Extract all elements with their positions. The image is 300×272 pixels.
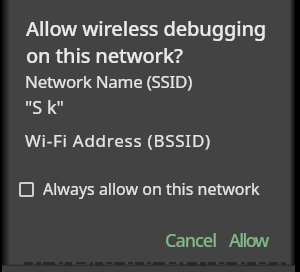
staticText: "S k" bbox=[25, 95, 64, 120]
button[interactable]: Always allow on this network bbox=[14, 174, 260, 204]
staticText: Always allow on this network bbox=[43, 178, 260, 200]
button[interactable]: Cancel bbox=[157, 222, 225, 259]
button[interactable]: Allow bbox=[225, 222, 276, 259]
staticText: Network Name (SSID) bbox=[25, 70, 193, 93]
staticText: Cancel bbox=[165, 228, 217, 253]
staticText: Allow wireless debugging on this network… bbox=[26, 15, 267, 69]
staticText: Allow bbox=[229, 228, 268, 253]
staticText: Wi-Fi Address (BSSID) bbox=[25, 129, 211, 152]
